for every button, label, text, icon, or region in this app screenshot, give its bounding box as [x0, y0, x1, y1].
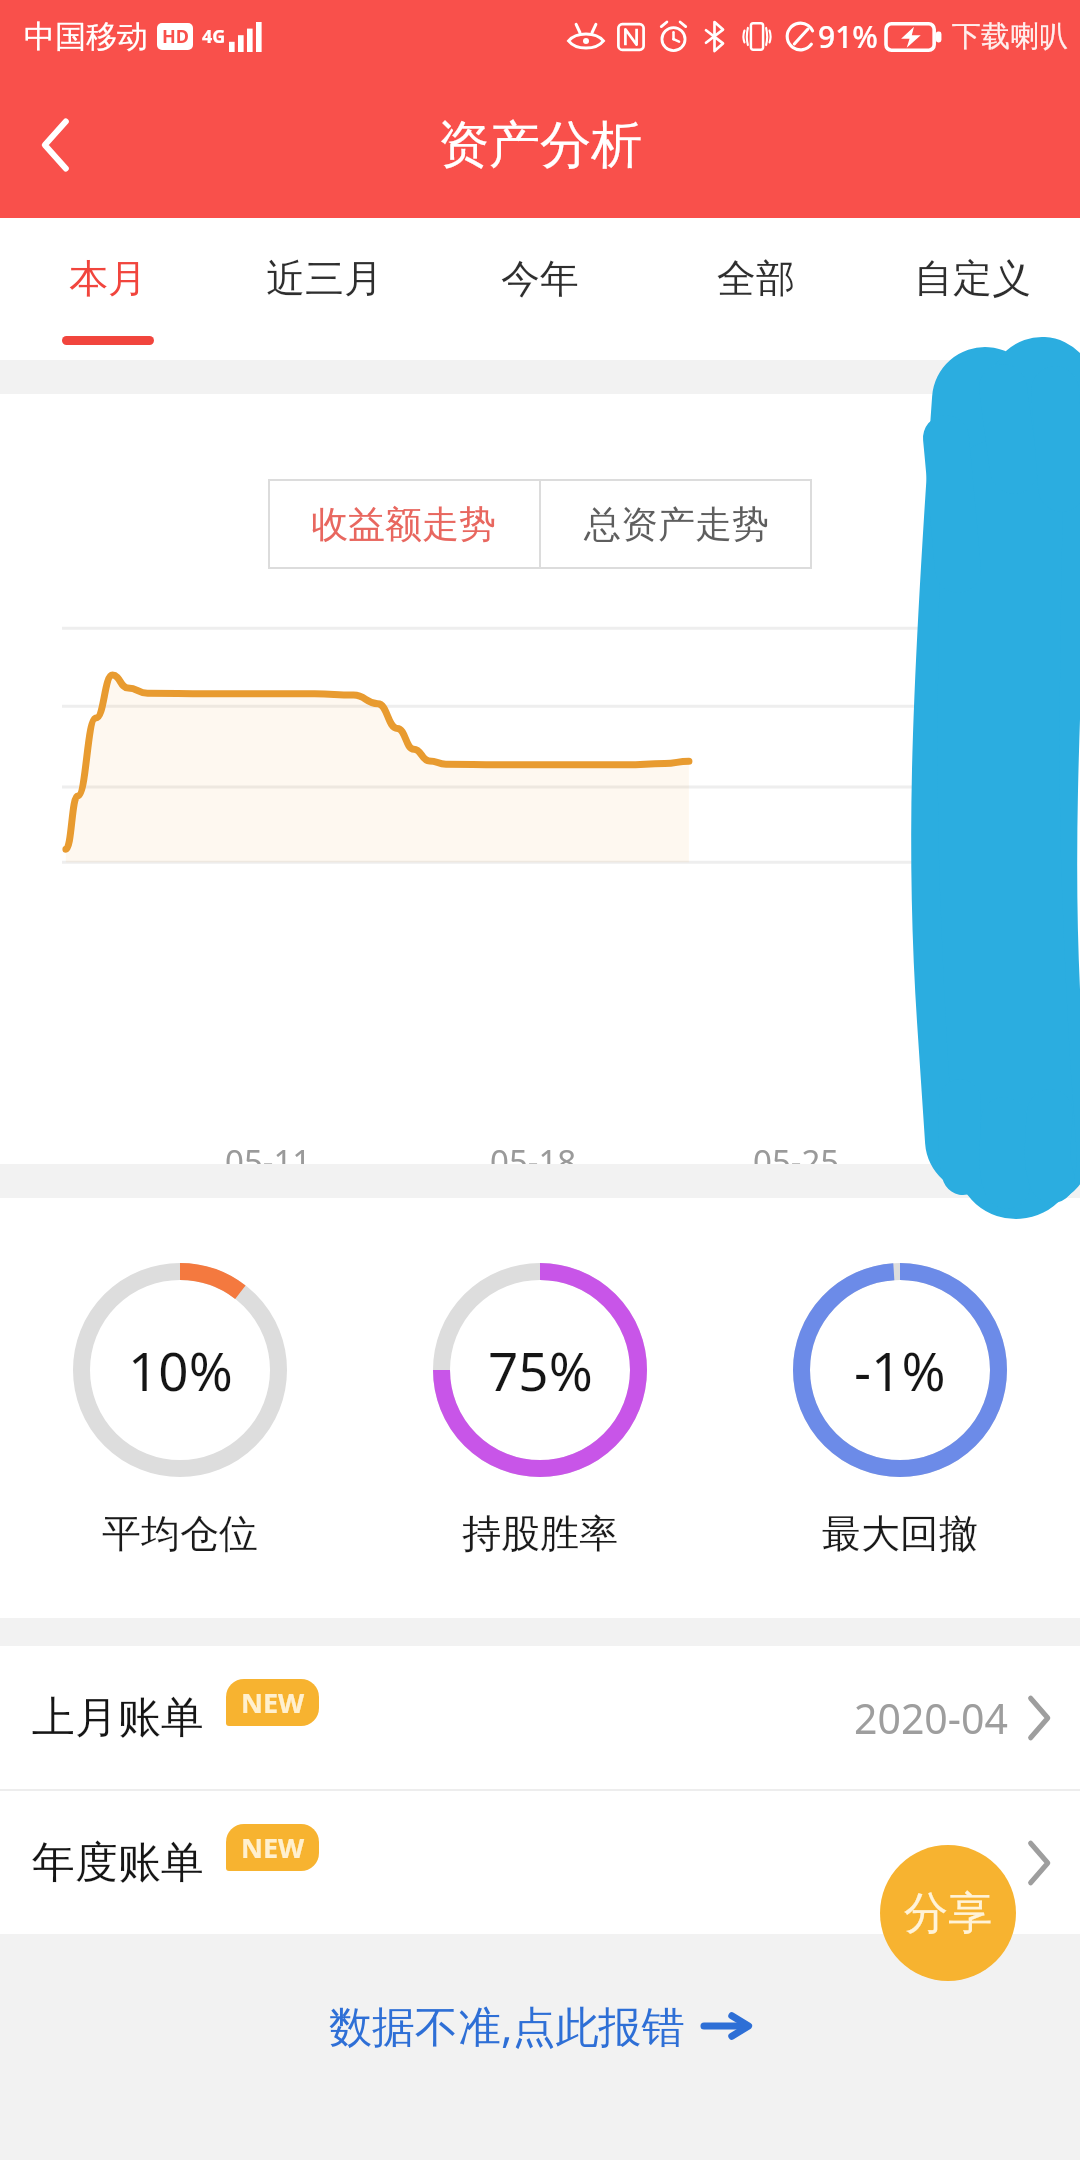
button[interactable]: 总资产走势	[541, 479, 812, 569]
staticText: 91%	[818, 16, 878, 57]
button[interactable]: 收益额走势	[268, 479, 539, 569]
staticText: 本月	[69, 254, 147, 303]
button[interactable]: 数据不准,点此报错	[329, 1996, 751, 2055]
button[interactable]: -1%	[720, 1259, 1080, 1558]
staticText: 持股胜率	[462, 1509, 618, 1558]
staticText: 4G	[202, 24, 226, 49]
staticText: -1%	[854, 1334, 946, 1406]
staticText: 收益额走势	[311, 501, 496, 548]
staticText: 05-11	[225, 1139, 312, 1164]
staticText: NEW	[241, 1829, 305, 1866]
staticText: 05-18	[490, 1139, 577, 1164]
staticText: 05-25	[753, 1139, 840, 1164]
staticText: 最大回撤	[822, 1509, 978, 1558]
staticText: 上月账单	[32, 1691, 204, 1745]
button[interactable]: 返回	[0, 85, 112, 205]
staticText: 自定义	[914, 254, 1031, 303]
staticText: HD	[162, 24, 189, 49]
button[interactable]: 上月账单	[0, 1646, 1080, 1789]
button[interactable]: 75%	[360, 1259, 720, 1558]
staticText: 数据不准,点此报错	[329, 1996, 685, 2055]
staticText: 今年	[501, 254, 579, 303]
staticText: 总资产走势	[584, 501, 769, 548]
button[interactable]: 自定义	[864, 218, 1080, 360]
staticText: 年度账单	[32, 1836, 204, 1890]
button[interactable]: 10%	[0, 1259, 360, 1558]
staticText: NEW	[241, 1684, 305, 1721]
button[interactable]: 全部	[648, 218, 864, 360]
staticText: 全部	[717, 254, 795, 303]
staticText: 分享	[904, 1886, 992, 1941]
staticText: 中国移动	[24, 17, 148, 56]
button[interactable]: 今年	[432, 218, 648, 360]
staticText: 10%	[128, 1334, 233, 1406]
staticText: 近三月	[266, 254, 383, 303]
staticText: 资产分析	[438, 113, 642, 177]
staticText: 75%	[488, 1334, 593, 1406]
button[interactable]: 分享	[880, 1845, 1016, 1981]
staticText: 2020-04	[854, 1690, 1008, 1746]
button[interactable]: 本月	[0, 218, 216, 360]
button[interactable]: 近三月	[216, 218, 432, 360]
staticText: 平均仓位	[102, 1509, 258, 1558]
button[interactable]: 年度账单	[0, 1791, 1080, 1934]
staticText: 下载喇叭	[952, 18, 1068, 55]
